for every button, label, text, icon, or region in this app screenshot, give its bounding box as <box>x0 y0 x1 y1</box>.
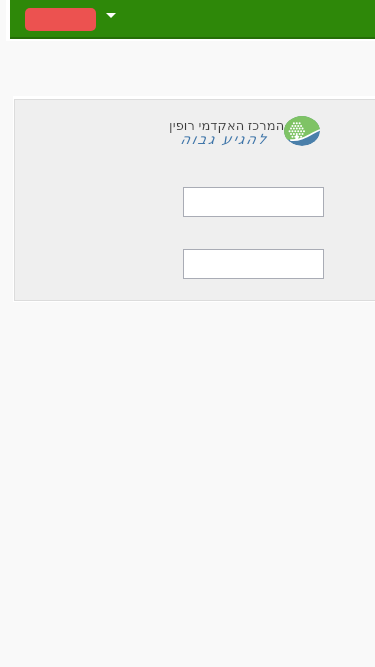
button[interactable]: Language <box>25 8 96 31</box>
button[interactable]: Password field <box>183 249 324 279</box>
staticText: המרכז האקדמי רופין <box>169 116 285 134</box>
staticText: להגיע גבוה <box>180 129 268 148</box>
button[interactable]: Username field <box>183 187 324 217</box>
button[interactable]: Open menu <box>96 0 126 37</box>
